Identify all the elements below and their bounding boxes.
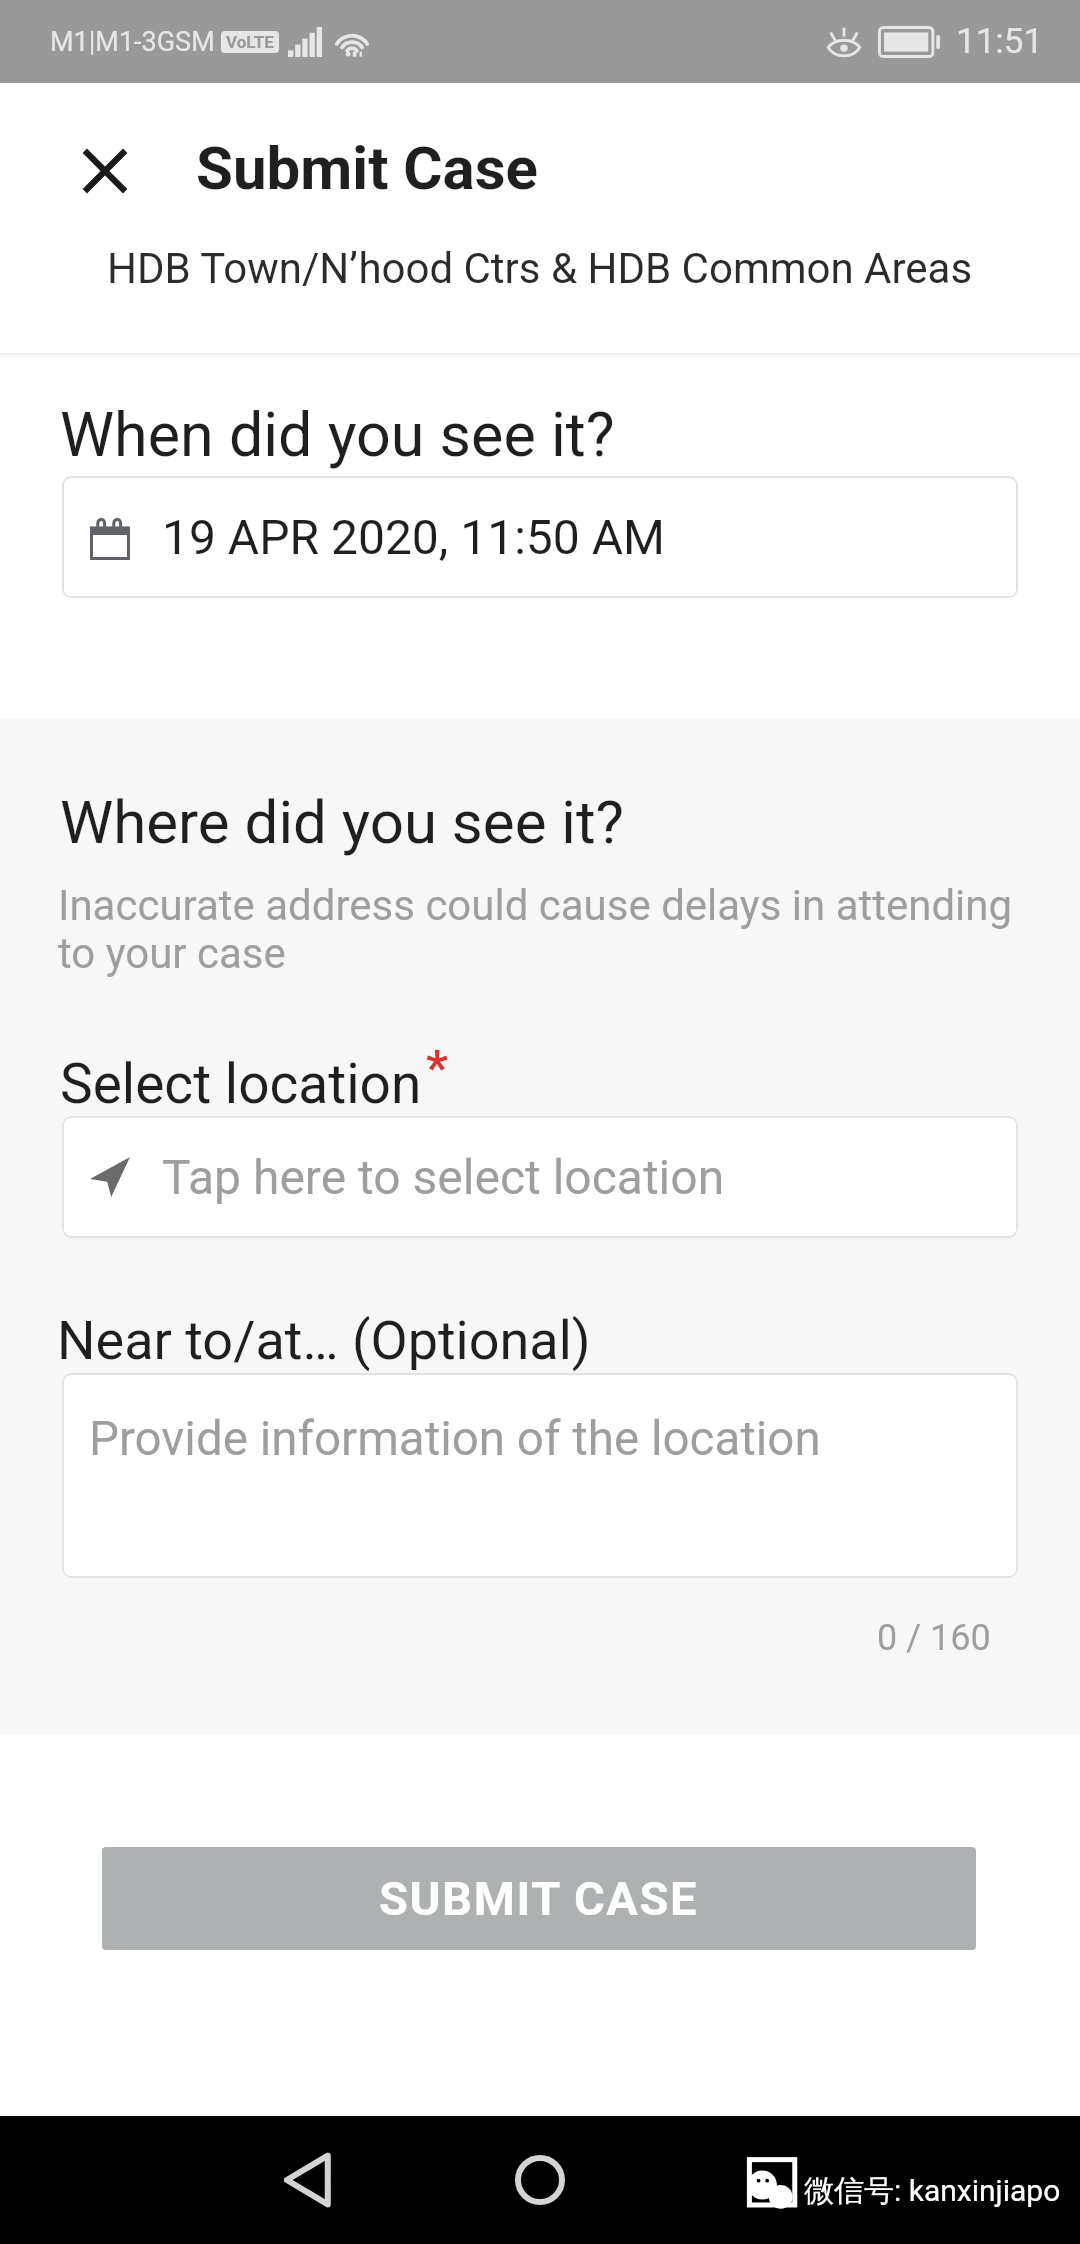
- staticText: SUBMIT CASE: [379, 1871, 699, 1926]
- staticText: 19 APR 2020, 11:50 AM: [162, 509, 665, 565]
- staticText: Inaccurate address could cause delays in…: [58, 881, 1028, 978]
- button[interactable]: Provide information of the location: [62, 1373, 1018, 1578]
- staticText: Where did you see it?: [60, 787, 624, 857]
- staticText: 0 / 160: [877, 1617, 991, 1659]
- staticText: *: [426, 1039, 448, 1095]
- button[interactable]: Close: [62, 128, 148, 214]
- staticText: When did you see it?: [60, 399, 615, 470]
- staticText: Tap here to select location: [162, 1149, 725, 1205]
- button[interactable]: SUBMIT CASE: [102, 1847, 976, 1950]
- button[interactable]: Tap here to select location: [62, 1116, 1018, 1238]
- staticText: 11:51: [956, 21, 1044, 62]
- staticText: M1|M1-3GSM: [50, 26, 215, 58]
- staticText: Submit Case: [196, 133, 538, 203]
- button[interactable]: Back: [262, 2142, 354, 2218]
- staticText: Near to/at… (Optional): [57, 1309, 591, 1372]
- staticText: 微信号: kanxinjiapo: [804, 2172, 1061, 2210]
- button[interactable]: Home: [494, 2142, 586, 2218]
- staticText: VoLTE: [226, 32, 274, 52]
- button[interactable]: 19 APR 2020, 11:50 AM: [62, 476, 1018, 598]
- staticText: Select location: [60, 1052, 422, 1116]
- staticText: HDB Town/N’hood Ctrs & HDB Common Areas: [107, 244, 973, 293]
- staticText: Provide information of the location: [89, 1411, 821, 1467]
